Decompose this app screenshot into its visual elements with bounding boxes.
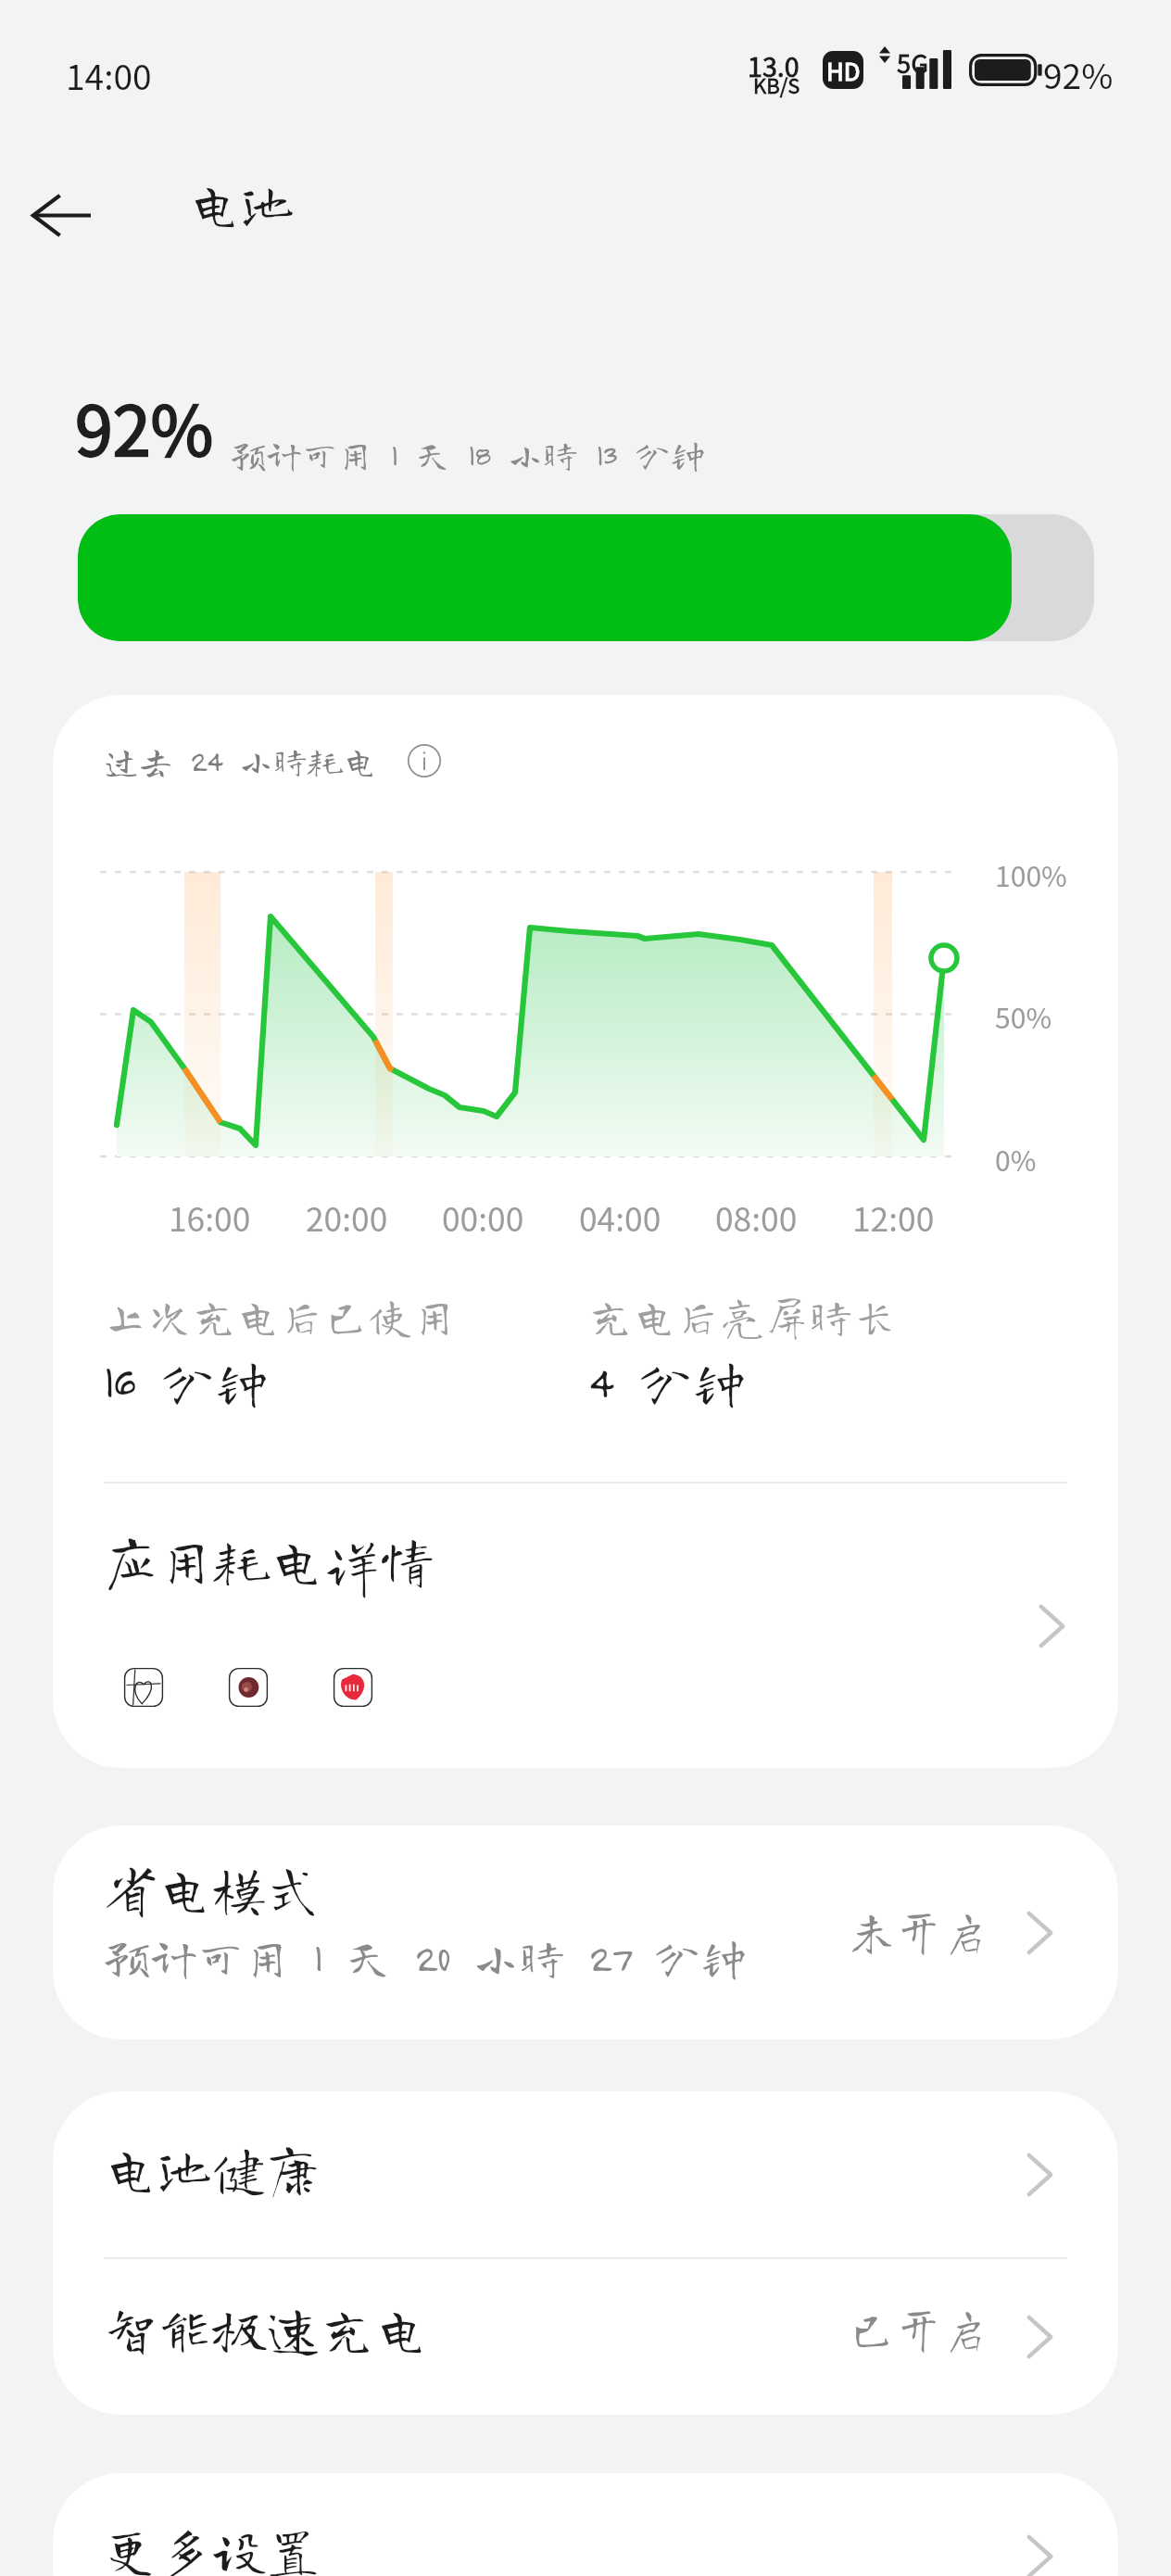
staticText: 应用耗电详情 [104, 1533, 434, 1588]
staticText: 预计可用 1 天 20 小时 27 分钟 [104, 1934, 748, 1980]
staticText: 5G [897, 44, 928, 81]
staticText: 00:00 [442, 1193, 524, 1241]
staticText: HD [826, 53, 861, 88]
staticText: KB/S [753, 69, 800, 99]
staticText: 04:00 [579, 1193, 661, 1241]
staticText: 过去 24 小时耗电 [104, 743, 378, 777]
button[interactable]: 电池健康 [53, 2091, 1118, 2257]
button[interactable]: 智能极速充电 [53, 2259, 1118, 2415]
staticText: 13.0 [748, 46, 800, 85]
staticText: 20:00 [306, 1193, 388, 1241]
staticText: 08:00 [715, 1193, 798, 1241]
staticText: 已开启 [849, 2305, 989, 2352]
staticText: 92% [1043, 49, 1114, 99]
staticText: 电池健康 [104, 2141, 1026, 2195]
staticText: 智能极速充电 [104, 2302, 849, 2355]
staticText: 充电后亮屏时长 [588, 1294, 898, 1338]
staticText: 预计可用 1 天 18 小时 13 分钟 [231, 436, 706, 473]
staticText: 未开启 [849, 1908, 989, 1954]
button[interactable]: 省电模式 [53, 1825, 1118, 2039]
staticText: 电池 [188, 176, 295, 229]
button[interactable]: Back [26, 183, 97, 247]
staticText: 16:00 [169, 1193, 251, 1241]
staticText: 更多设置 [104, 2523, 1026, 2576]
staticText: 4 分钟 [588, 1355, 747, 1408]
staticText: 16 分钟 [104, 1355, 270, 1408]
staticText: 50% [995, 996, 1052, 1037]
staticText: 上次充电后已使用 [104, 1294, 457, 1338]
button[interactable]: 更多设置 [53, 2473, 1118, 2576]
staticText: 14:00 [66, 50, 152, 100]
staticText: 0% [995, 1139, 1037, 1180]
staticText: 92% [75, 377, 214, 475]
staticText: 省电模式 [104, 1862, 321, 1915]
staticText: 100% [995, 854, 1067, 895]
button[interactable]: 应用耗电详情 [53, 1484, 1118, 1768]
staticText: 12:00 [852, 1193, 935, 1241]
